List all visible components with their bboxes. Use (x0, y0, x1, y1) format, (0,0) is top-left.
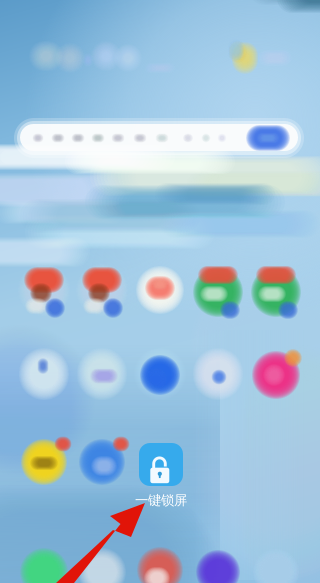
staticText: 一键锁屏 (135, 492, 187, 508)
button[interactable]: 一键锁屏 (121, 443, 201, 508)
